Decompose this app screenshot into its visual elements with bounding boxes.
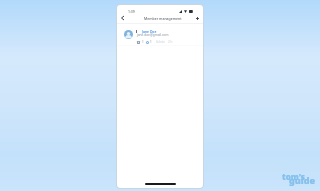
staticText: guide — [289, 174, 316, 186]
staticText: 2 h — [168, 40, 173, 44]
staticText: tom's — [282, 171, 305, 182]
staticText: Jane Doe — [142, 29, 157, 34]
button[interactable]: Jane Doe — [117, 25, 203, 46]
staticText: 1 — [150, 40, 152, 44]
button[interactable]: Add member — [192, 13, 202, 23]
staticText: 1:39 — [128, 9, 135, 14]
staticText: Admin — [156, 40, 166, 44]
staticText: Member management — [144, 16, 182, 21]
button[interactable]: Back — [117, 13, 127, 23]
staticText: jane.doe@gmail.com — [137, 33, 169, 37]
staticText: 1 — [142, 40, 144, 44]
